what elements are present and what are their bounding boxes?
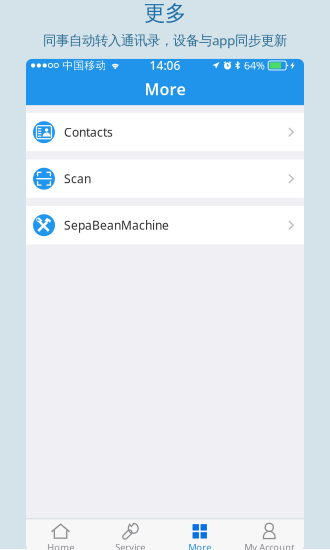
button[interactable]: More xyxy=(165,519,234,550)
staticText: SepaBeanMachine xyxy=(64,217,169,233)
staticText: Scan xyxy=(64,171,91,187)
button[interactable]: Service xyxy=(95,519,165,550)
staticText: Home xyxy=(47,541,74,550)
button[interactable]: My Account xyxy=(234,519,304,550)
staticText: More xyxy=(188,541,211,550)
staticText: 更多 xyxy=(144,0,186,26)
button[interactable]: SepaBeanMachine xyxy=(26,206,304,244)
staticText: More xyxy=(144,78,185,99)
staticText: 同事自动转入通讯录，设备与app同步更新 xyxy=(43,31,287,49)
staticText: Service xyxy=(115,541,145,550)
staticText: Contacts xyxy=(64,124,113,140)
staticText: 中国移动 xyxy=(62,59,106,72)
staticText: My Account xyxy=(244,541,294,550)
button[interactable]: Contacts xyxy=(26,113,304,151)
staticText: 14:06 xyxy=(149,57,180,73)
button[interactable]: Scan xyxy=(26,159,304,198)
button[interactable]: Home xyxy=(26,519,95,550)
staticText: 64% xyxy=(244,58,265,73)
